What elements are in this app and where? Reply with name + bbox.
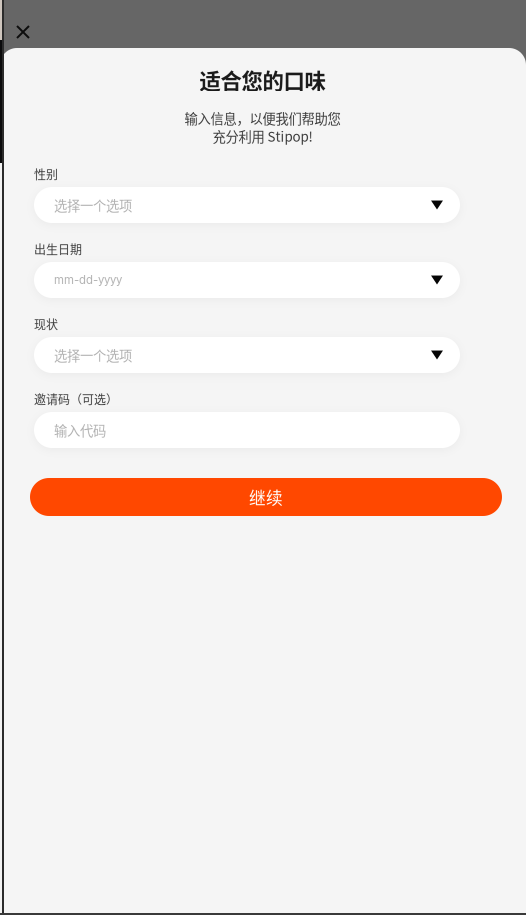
- button[interactable]: 选择一个选项: [34, 187, 460, 223]
- staticText: 出生日期: [34, 240, 82, 258]
- staticText: 性别: [34, 165, 58, 183]
- staticText: 输入代码: [54, 420, 106, 440]
- staticText: 现状: [34, 315, 58, 333]
- button[interactable]: Close: [6, 15, 40, 49]
- staticText: 邀请码（可选）: [34, 390, 118, 408]
- staticText: 选择一个选项: [54, 345, 132, 365]
- staticText: 输入信息，以便我们帮助您: [184, 108, 340, 128]
- button[interactable]: 选择一个选项: [34, 337, 460, 373]
- staticText: 充分利用 Stipop!: [212, 126, 312, 146]
- button[interactable]: 输入代码: [34, 412, 460, 448]
- staticText: 继续: [249, 485, 283, 509]
- button[interactable]: mm-dd-yyyy: [34, 262, 460, 298]
- staticText: 适合您的口味: [199, 65, 325, 95]
- staticText: mm-dd-yyyy: [54, 273, 122, 287]
- button[interactable]: 继续: [30, 478, 502, 516]
- staticText: 选择一个选项: [54, 195, 132, 215]
